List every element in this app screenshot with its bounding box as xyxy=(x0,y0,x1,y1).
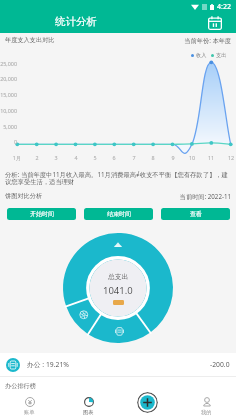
staticText: 1月 xyxy=(8,154,26,161)
staticText: 当前时间: 2022-11 xyxy=(140,192,231,200)
button[interactable]: Add xyxy=(137,392,158,413)
staticText: 10 xyxy=(183,154,201,161)
staticText: 9 xyxy=(164,154,182,161)
staticText: 25,000 xyxy=(0,60,17,67)
button[interactable]: 账单 xyxy=(0,393,59,420)
staticText: 11 xyxy=(202,154,220,161)
staticText: 6 xyxy=(105,154,123,161)
button[interactable]: 我的 xyxy=(177,393,236,420)
staticText: 分析: 当前年度中11月收入最高。11月消费最高≠收支不平衡【您有存款了】，建议… xyxy=(5,170,231,186)
button[interactable]: 图表 xyxy=(59,393,118,420)
staticText: 0 xyxy=(0,138,17,145)
staticText: 5,000 xyxy=(0,123,17,130)
button[interactable]: Calendar xyxy=(206,14,224,32)
staticText: 12 xyxy=(222,154,236,161)
staticText: 饼图对比分析 xyxy=(5,192,43,200)
button[interactable]: 开始时间 xyxy=(7,208,76,220)
staticText: 办公 : 19.21% xyxy=(27,360,69,369)
staticText: 当前年份: 本年度 xyxy=(140,36,231,44)
button[interactable]: 办公 : 19.21% xyxy=(6,353,230,376)
staticText: 10,000 xyxy=(0,107,17,114)
staticText: 总支出 xyxy=(108,272,129,281)
button[interactable]: 结束时间 xyxy=(84,208,153,220)
staticText: 5 xyxy=(86,154,104,161)
staticText: 8 xyxy=(144,154,162,161)
staticText: 收入 xyxy=(196,52,207,59)
staticText: 统计分析 xyxy=(55,15,97,28)
staticText: 年度支入支出对比 xyxy=(5,36,55,44)
staticText: 4:22 xyxy=(217,2,231,12)
staticText: 2 xyxy=(28,154,46,161)
staticText: 查看 xyxy=(190,210,202,218)
staticText: 4 xyxy=(67,154,85,161)
staticText: 结束时间 xyxy=(107,210,131,218)
staticText: 办公排行榜 xyxy=(5,382,36,390)
staticText: 图表 xyxy=(83,409,94,416)
staticText: 账单 xyxy=(24,409,35,416)
staticText: 3 xyxy=(47,154,65,161)
staticText: 15,000 xyxy=(0,91,17,98)
staticText: 1041.0 xyxy=(103,284,133,297)
staticText: 我的 xyxy=(201,409,212,416)
staticText: -200.0 xyxy=(210,360,230,369)
button[interactable]: 查看 xyxy=(161,208,230,220)
staticText: 20,000 xyxy=(0,75,17,82)
staticText: 开始时间 xyxy=(30,210,54,218)
staticText: 支出 xyxy=(216,52,227,59)
staticText: 7 xyxy=(125,154,143,161)
